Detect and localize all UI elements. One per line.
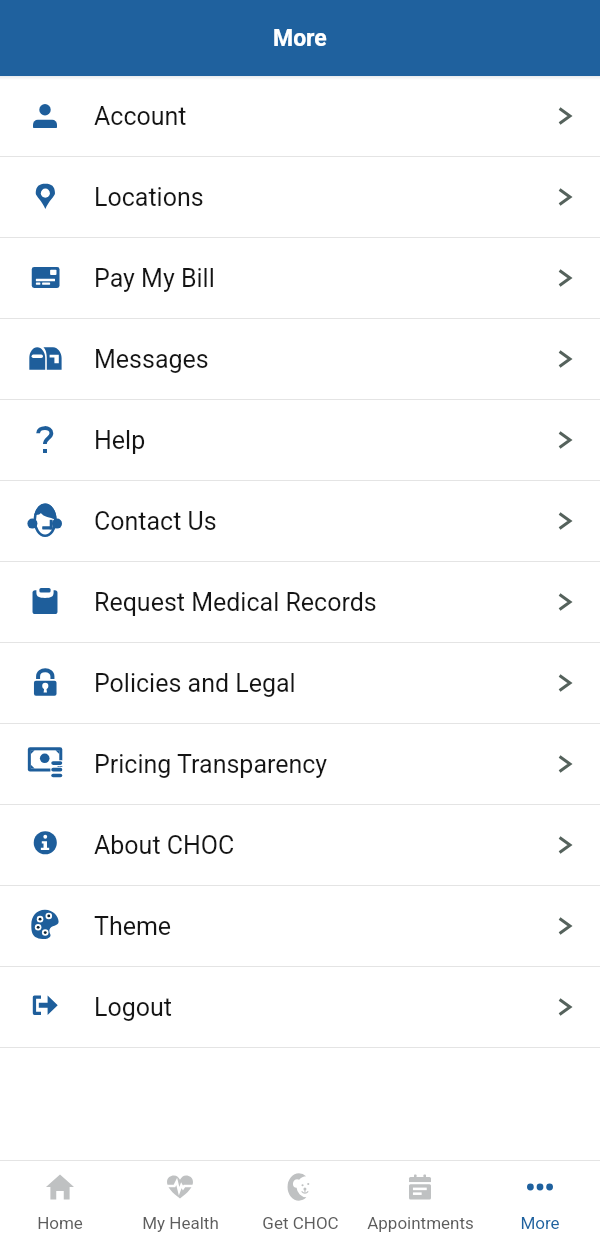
staticText: Logout (94, 993, 172, 1022)
staticText: My Health (142, 1213, 219, 1233)
button[interactable]: Home (0, 1161, 120, 1256)
staticText: Messages (94, 345, 209, 374)
staticText: Pay My Bill (94, 264, 215, 293)
staticText: Appointments (367, 1213, 474, 1233)
other: More (525, 1172, 555, 1202)
button[interactable]: Locations (0, 157, 600, 237)
staticText: Locations (94, 183, 204, 212)
staticText: Contact Us (94, 507, 217, 536)
button[interactable]: About CHOC (0, 805, 600, 885)
button[interactable]: Logout (0, 967, 600, 1047)
button[interactable]: Policies and Legal (0, 643, 600, 723)
staticText: Theme (94, 912, 172, 941)
button[interactable]: Appointments (360, 1161, 480, 1256)
button[interactable]: Pay My Bill (0, 238, 600, 318)
other: Home (45, 1172, 75, 1202)
staticText: Policies and Legal (94, 669, 296, 698)
other: Appointments (405, 1172, 435, 1202)
button[interactable]: Messages (0, 319, 600, 399)
staticText: More (273, 25, 327, 52)
staticText: Get CHOC (262, 1213, 339, 1233)
button[interactable]: Pricing Transparency (0, 724, 600, 804)
other: My Health (165, 1172, 195, 1202)
button[interactable]: Request Medical Records (0, 562, 600, 642)
staticText: More (520, 1213, 560, 1233)
staticText: Help (94, 426, 146, 455)
staticText: Request Medical Records (94, 588, 377, 617)
button[interactable]: Help (0, 400, 600, 480)
button[interactable]: Account (0, 76, 600, 156)
button[interactable]: More (480, 1161, 600, 1256)
staticText: Home (37, 1213, 83, 1233)
other: Get CHOC (285, 1172, 315, 1202)
button[interactable]: My Health (120, 1161, 240, 1256)
button[interactable]: Contact Us (0, 481, 600, 561)
staticText: Pricing Transparency (94, 750, 328, 779)
button[interactable]: Theme (0, 886, 600, 966)
button[interactable]: Get CHOC (240, 1161, 360, 1256)
staticText: Account (94, 102, 187, 131)
staticText: About CHOC (94, 831, 235, 860)
